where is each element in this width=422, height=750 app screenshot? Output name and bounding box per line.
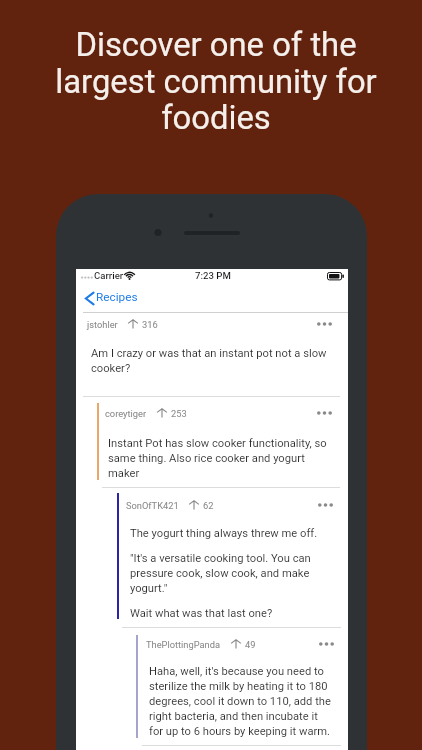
staticText: Carrier <box>94 270 124 281</box>
staticText: Instant Pot has slow cooker functionalit… <box>108 437 330 480</box>
button[interactable]: More options <box>315 318 334 330</box>
staticText: ThePlottingPanda <box>146 639 221 650</box>
button[interactable] <box>76 628 348 746</box>
staticText: Wait what was that last one? <box>130 607 273 620</box>
button[interactable]: More options <box>316 499 335 511</box>
button[interactable] <box>76 313 348 397</box>
staticText: coreytiger <box>105 408 147 419</box>
staticText: 62 <box>203 500 214 511</box>
staticText: Recipes <box>96 290 138 304</box>
staticText: jstohler <box>87 319 118 330</box>
button[interactable]: More options <box>317 638 336 650</box>
button[interactable]: More options <box>315 407 334 419</box>
button[interactable]: Recipes <box>76 288 348 312</box>
staticText: 49 <box>245 639 256 650</box>
button[interactable] <box>76 488 348 628</box>
staticText: 7:23 PM <box>195 270 231 281</box>
staticText: "It's a versatile cooking tool. You can … <box>130 552 332 595</box>
staticText: Haha, well, it's because you need to ste… <box>149 665 332 738</box>
staticText: The yogurt thing always threw me off. <box>130 527 318 540</box>
staticText: Discover one of the largest community fo… <box>5 26 422 137</box>
staticText: Am I crazy or was that an instant pot no… <box>91 347 331 375</box>
staticText: 253 <box>171 408 187 419</box>
staticText: 316 <box>142 319 158 330</box>
staticText: SonOfTK421 <box>126 500 179 511</box>
button[interactable] <box>76 397 348 488</box>
